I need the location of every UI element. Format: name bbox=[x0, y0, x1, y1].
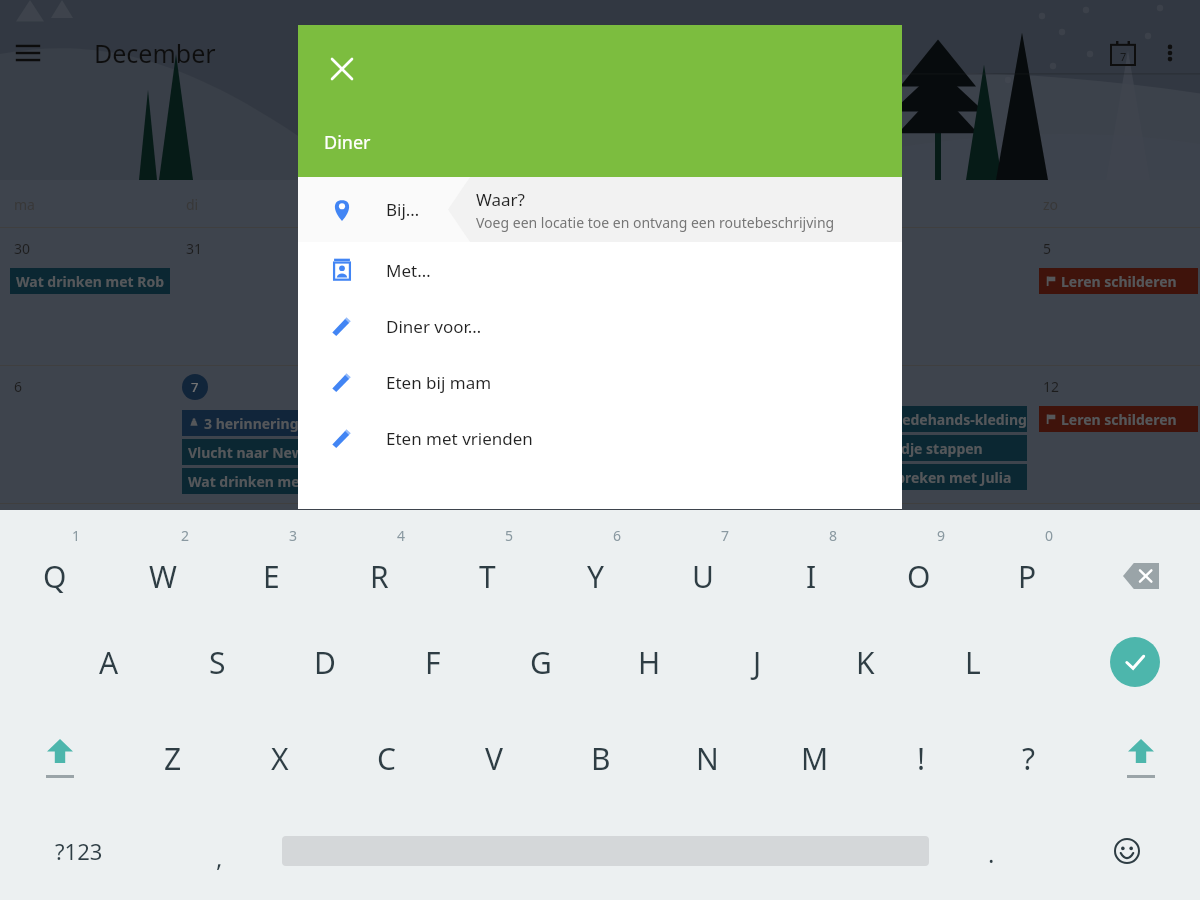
staticText: 3 bbox=[289, 526, 298, 545]
button[interactable]: 5 bbox=[433, 518, 541, 614]
button[interactable]: V bbox=[440, 710, 547, 806]
button[interactable]: Leren schilderen bbox=[1039, 268, 1198, 294]
button[interactable]: Z bbox=[119, 710, 226, 806]
button[interactable]: Open navigation menu bbox=[0, 25, 56, 81]
button[interactable]: 2 bbox=[516, 228, 687, 366]
staticText: 4 bbox=[872, 239, 881, 258]
button[interactable]: ? bbox=[975, 710, 1082, 806]
button[interactable]: 3 herinneringen bbox=[182, 410, 342, 436]
staticText: N bbox=[696, 738, 719, 779]
button[interactable]: 4 bbox=[858, 228, 1029, 366]
button[interactable]: Diner voor… bbox=[298, 298, 902, 354]
button[interactable]: A bbox=[55, 614, 163, 710]
button[interactable]: 1 bbox=[0, 518, 109, 614]
button[interactable]: Done bbox=[1070, 614, 1200, 710]
staticText: 12 bbox=[1043, 377, 1060, 396]
button[interactable]: G bbox=[487, 614, 595, 710]
button[interactable]: 4 bbox=[325, 518, 433, 614]
staticText: 5 bbox=[505, 526, 514, 545]
button[interactable]: Backspace bbox=[1081, 518, 1200, 614]
button[interactable]: Shift bbox=[0, 710, 119, 806]
staticText: Leren schilderen bbox=[1061, 410, 1177, 429]
button[interactable]: J bbox=[703, 614, 811, 710]
button[interactable]: 12 bbox=[1029, 366, 1200, 504]
button[interactable]: Emoji bbox=[1054, 806, 1200, 896]
button[interactable]: S bbox=[163, 614, 271, 710]
button[interactable]: 11 bbox=[858, 366, 1029, 504]
button[interactable]: 9 bbox=[865, 518, 973, 614]
button[interactable]: 3 bbox=[687, 228, 858, 366]
staticText: H bbox=[638, 642, 661, 683]
button[interactable]: Go to today bbox=[1096, 26, 1150, 80]
button[interactable]: 7 bbox=[172, 366, 344, 504]
button[interactable]: Eten bij mam bbox=[298, 354, 902, 410]
button[interactable]: Eten met vrienden bbox=[298, 410, 902, 466]
button[interactable]: Leren schilderen bbox=[1039, 406, 1198, 432]
staticText: F bbox=[425, 642, 441, 683]
button[interactable]: 3 bbox=[217, 518, 325, 614]
button[interactable]: , bbox=[157, 806, 282, 896]
button[interactable]: B bbox=[547, 710, 654, 806]
button[interactable]: F bbox=[379, 614, 487, 710]
staticText: V bbox=[485, 738, 503, 779]
staticText: Leren schilderen bbox=[1061, 272, 1177, 291]
staticText: G bbox=[530, 642, 552, 683]
button[interactable]: K bbox=[811, 614, 919, 710]
button[interactable]: Wat drinken met Rob bbox=[10, 268, 170, 294]
button[interactable]: 31 bbox=[172, 228, 344, 366]
button[interactable]: 8 bbox=[757, 518, 865, 614]
staticText: ma bbox=[14, 195, 35, 214]
staticText: Wat drinken met Ma bbox=[188, 472, 331, 491]
button[interactable]: H bbox=[595, 614, 703, 710]
button[interactable]: ! bbox=[868, 710, 975, 806]
staticText: 4 bbox=[397, 526, 406, 545]
staticText: 2 bbox=[181, 526, 190, 545]
staticText: Eten bij mam bbox=[386, 371, 492, 394]
button[interactable]: More options bbox=[1150, 33, 1190, 73]
button[interactable]: 2 bbox=[109, 518, 217, 614]
staticText: P bbox=[1018, 556, 1037, 597]
button[interactable]: Afspreken met Julia bbox=[868, 464, 1027, 490]
staticText: B bbox=[591, 738, 611, 779]
button[interactable]: . bbox=[929, 806, 1054, 896]
staticText: Tweedehands-kleding bbox=[874, 410, 1027, 429]
button[interactable]: Vlucht naar New York bbox=[182, 439, 342, 465]
button[interactable]: N bbox=[654, 710, 761, 806]
button[interactable]: D bbox=[271, 614, 379, 710]
button[interactable]: Wat drinken met Ma bbox=[182, 468, 342, 494]
button[interactable]: Shift bbox=[1082, 710, 1200, 806]
button[interactable]: C bbox=[333, 710, 440, 806]
button[interactable]: 0 bbox=[973, 518, 1081, 614]
button[interactable]: 30 bbox=[0, 228, 172, 366]
staticText: Diner voor… bbox=[386, 315, 482, 338]
button[interactable]: Bij… bbox=[298, 177, 902, 242]
button[interactable]: Space bbox=[282, 806, 929, 896]
button[interactable]: 1 bbox=[344, 228, 516, 366]
staticText: X bbox=[271, 738, 289, 779]
button[interactable]: L bbox=[919, 614, 1027, 710]
button[interactable]: 5 bbox=[1029, 228, 1200, 366]
button[interactable]: X bbox=[226, 710, 333, 806]
staticText: ! bbox=[917, 738, 926, 779]
staticText: , bbox=[216, 841, 223, 874]
staticText: di bbox=[186, 195, 199, 214]
button[interactable]: 6 bbox=[541, 518, 649, 614]
button[interactable]: Rondje stappen bbox=[868, 435, 1027, 461]
button[interactable]: M bbox=[761, 710, 868, 806]
staticText: T bbox=[479, 556, 496, 597]
button[interactable]: 9 bbox=[516, 366, 687, 504]
button[interactable]: Met… bbox=[298, 242, 902, 298]
button[interactable]: 7 bbox=[649, 518, 757, 614]
staticText: 8 bbox=[829, 526, 838, 545]
button[interactable]: 8 bbox=[344, 366, 516, 504]
button[interactable]: Close bbox=[322, 49, 362, 89]
button[interactable]: ?123 bbox=[0, 806, 157, 896]
staticText: Voeg een locatie toe en ontvang een rout… bbox=[476, 213, 835, 232]
button[interactable]: Tweedehands-kleding bbox=[868, 406, 1027, 432]
staticText: Q bbox=[43, 556, 67, 597]
staticText: 30 bbox=[14, 239, 31, 258]
